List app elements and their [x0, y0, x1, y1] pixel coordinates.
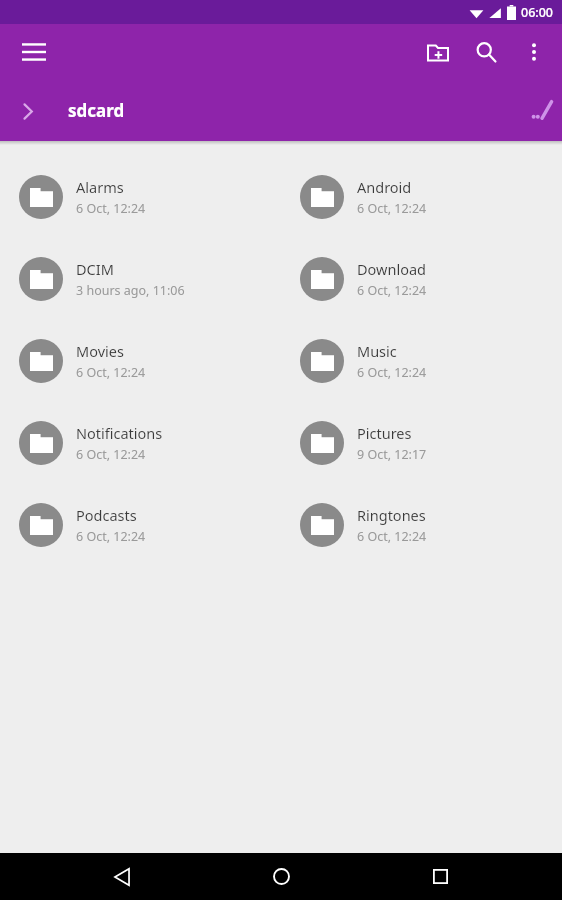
- staticText: Android: [357, 177, 412, 197]
- button[interactable]: Notifications: [0, 402, 281, 484]
- staticText: Music: [357, 341, 397, 361]
- staticText: 3 hours ago, 11:06: [76, 282, 185, 299]
- button[interactable]: Ringtones: [281, 484, 562, 566]
- staticText: Download: [357, 259, 426, 279]
- staticText: DCIM: [76, 259, 114, 279]
- button[interactable]: DCIM: [0, 238, 281, 320]
- staticText: 6 Oct, 12:24: [76, 446, 146, 463]
- button[interactable]: Recent apps: [412, 853, 468, 900]
- button[interactable]: Pictures: [281, 402, 562, 484]
- button[interactable]: Up one level: [6, 89, 50, 133]
- button[interactable]: Download: [281, 238, 562, 320]
- staticText: 6 Oct, 12:24: [76, 364, 146, 381]
- button[interactable]: Edit path: [522, 91, 562, 131]
- button[interactable]: Alarms: [0, 156, 281, 238]
- staticText: 6 Oct, 12:24: [357, 364, 427, 381]
- staticText: sdcard: [68, 99, 125, 122]
- button[interactable]: More options: [510, 28, 558, 76]
- button[interactable]: Music: [281, 320, 562, 402]
- staticText: 6 Oct, 12:24: [357, 200, 427, 217]
- button[interactable]: Android: [281, 156, 562, 238]
- staticText: Podcasts: [76, 505, 137, 525]
- staticText: Alarms: [76, 177, 124, 197]
- staticText: 6 Oct, 12:24: [76, 528, 146, 545]
- button[interactable]: Podcasts: [0, 484, 281, 566]
- staticText: Ringtones: [357, 505, 426, 525]
- staticText: 6 Oct, 12:24: [76, 200, 146, 217]
- staticText: 9 Oct, 12:17: [357, 446, 427, 463]
- staticText: 6 Oct, 12:24: [357, 528, 427, 545]
- button[interactable]: Movies: [0, 320, 281, 402]
- button[interactable]: New folder: [414, 28, 462, 76]
- button[interactable]: Home: [253, 853, 309, 900]
- staticText: 6 Oct, 12:24: [357, 282, 427, 299]
- button[interactable]: sdcard: [68, 99, 125, 122]
- button[interactable]: Open navigation drawer: [10, 28, 58, 76]
- staticText: Movies: [76, 341, 124, 361]
- staticText: 06:00: [521, 4, 554, 21]
- staticText: Notifications: [76, 423, 163, 443]
- button[interactable]: Search: [462, 28, 510, 76]
- button[interactable]: Back: [94, 853, 150, 900]
- staticText: Pictures: [357, 423, 412, 443]
